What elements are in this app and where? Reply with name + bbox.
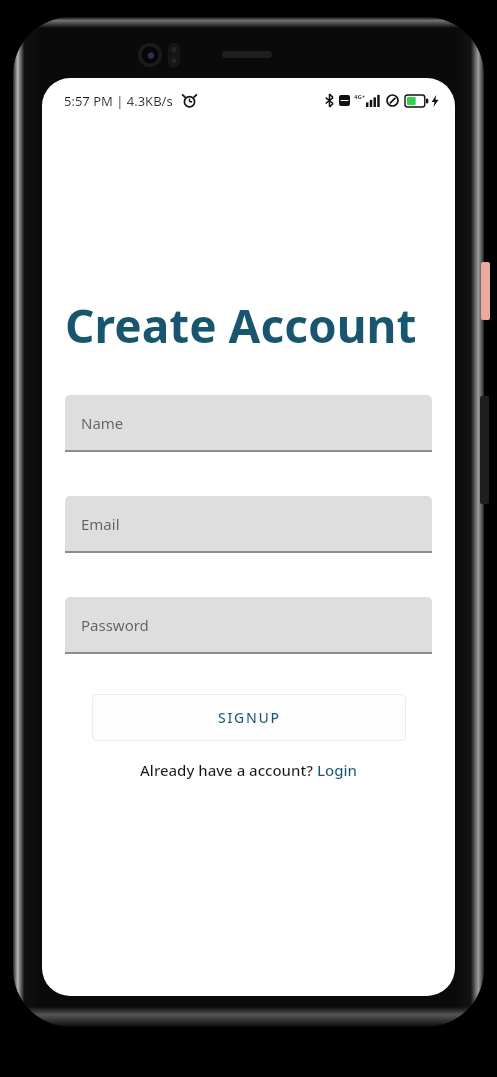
button[interactable]: Password bbox=[65, 597, 432, 654]
button[interactable]: Already have a account? bbox=[42, 760, 455, 780]
staticText: 4G+ bbox=[354, 93, 366, 101]
staticText: SIGNUP bbox=[218, 708, 281, 727]
staticText: 5:57 PM | 4.3KB/s bbox=[64, 92, 173, 110]
staticText: Login bbox=[317, 760, 357, 780]
staticText: Email bbox=[81, 514, 120, 534]
staticText: Create Account bbox=[65, 294, 417, 357]
staticText: Name bbox=[81, 413, 124, 433]
button[interactable]: Name bbox=[65, 395, 432, 452]
staticText: Password bbox=[81, 615, 149, 635]
button[interactable]: SIGNUP bbox=[92, 694, 406, 741]
staticText: Already have a account? bbox=[140, 760, 317, 780]
button[interactable]: Email bbox=[65, 496, 432, 553]
